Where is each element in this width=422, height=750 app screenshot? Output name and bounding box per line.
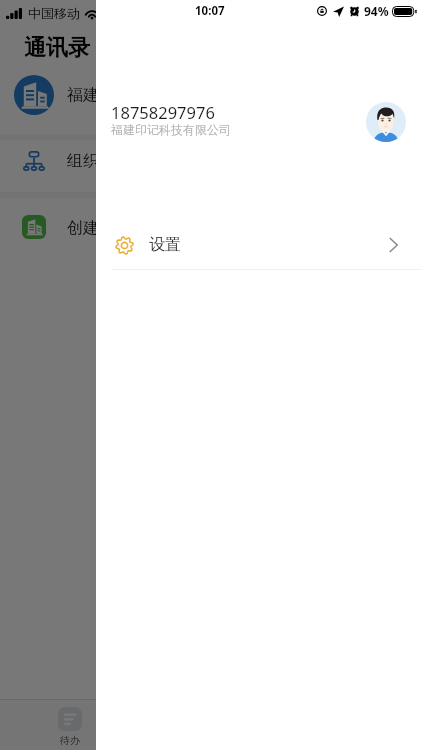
staticText: 设置 xyxy=(149,235,181,255)
staticText: 18758297976 xyxy=(111,101,215,123)
staticText: 组织架构 xyxy=(67,151,131,171)
button[interactable]: 创建/加入企业 xyxy=(0,194,422,260)
staticText: 94% xyxy=(364,3,389,19)
button[interactable]: 设置 xyxy=(96,220,422,270)
staticText: 福建印记科技有限公司 xyxy=(67,85,227,105)
button[interactable]: 关闭 Close panel xyxy=(0,0,96,750)
staticText: 通讯录 xyxy=(24,34,90,62)
button[interactable]: 18758297976 xyxy=(96,88,422,158)
staticText: 待办 xyxy=(60,734,80,747)
button[interactable]: 福建印记科技有限公司 xyxy=(0,62,422,128)
staticText: 福建印记科技有限公司 xyxy=(111,122,231,137)
button[interactable]: 待办 xyxy=(0,700,140,750)
button[interactable]: 组织架构 xyxy=(0,128,422,194)
staticText: 创建/加入企业 xyxy=(67,216,169,238)
staticText: 中国移动 xyxy=(28,5,80,21)
staticText: 10:07 xyxy=(195,3,225,19)
